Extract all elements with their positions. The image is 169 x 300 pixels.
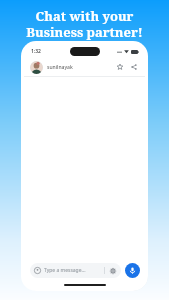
button[interactable]: Star	[115, 62, 125, 72]
button[interactable]: Profile photo	[24, 58, 145, 76]
button[interactable]: Type a message...	[30, 263, 121, 278]
staticText: sunilnayak	[47, 64, 73, 71]
staticText: 1:32	[31, 48, 41, 55]
staticText: Chat with your Business partner!	[8, 7, 161, 40]
button[interactable]: Settings	[109, 267, 117, 275]
button[interactable]: Send voice message	[125, 263, 140, 278]
button[interactable]: Share	[129, 62, 139, 72]
staticText: Type a message...	[44, 267, 86, 274]
button[interactable]: Profile photo	[30, 61, 43, 74]
